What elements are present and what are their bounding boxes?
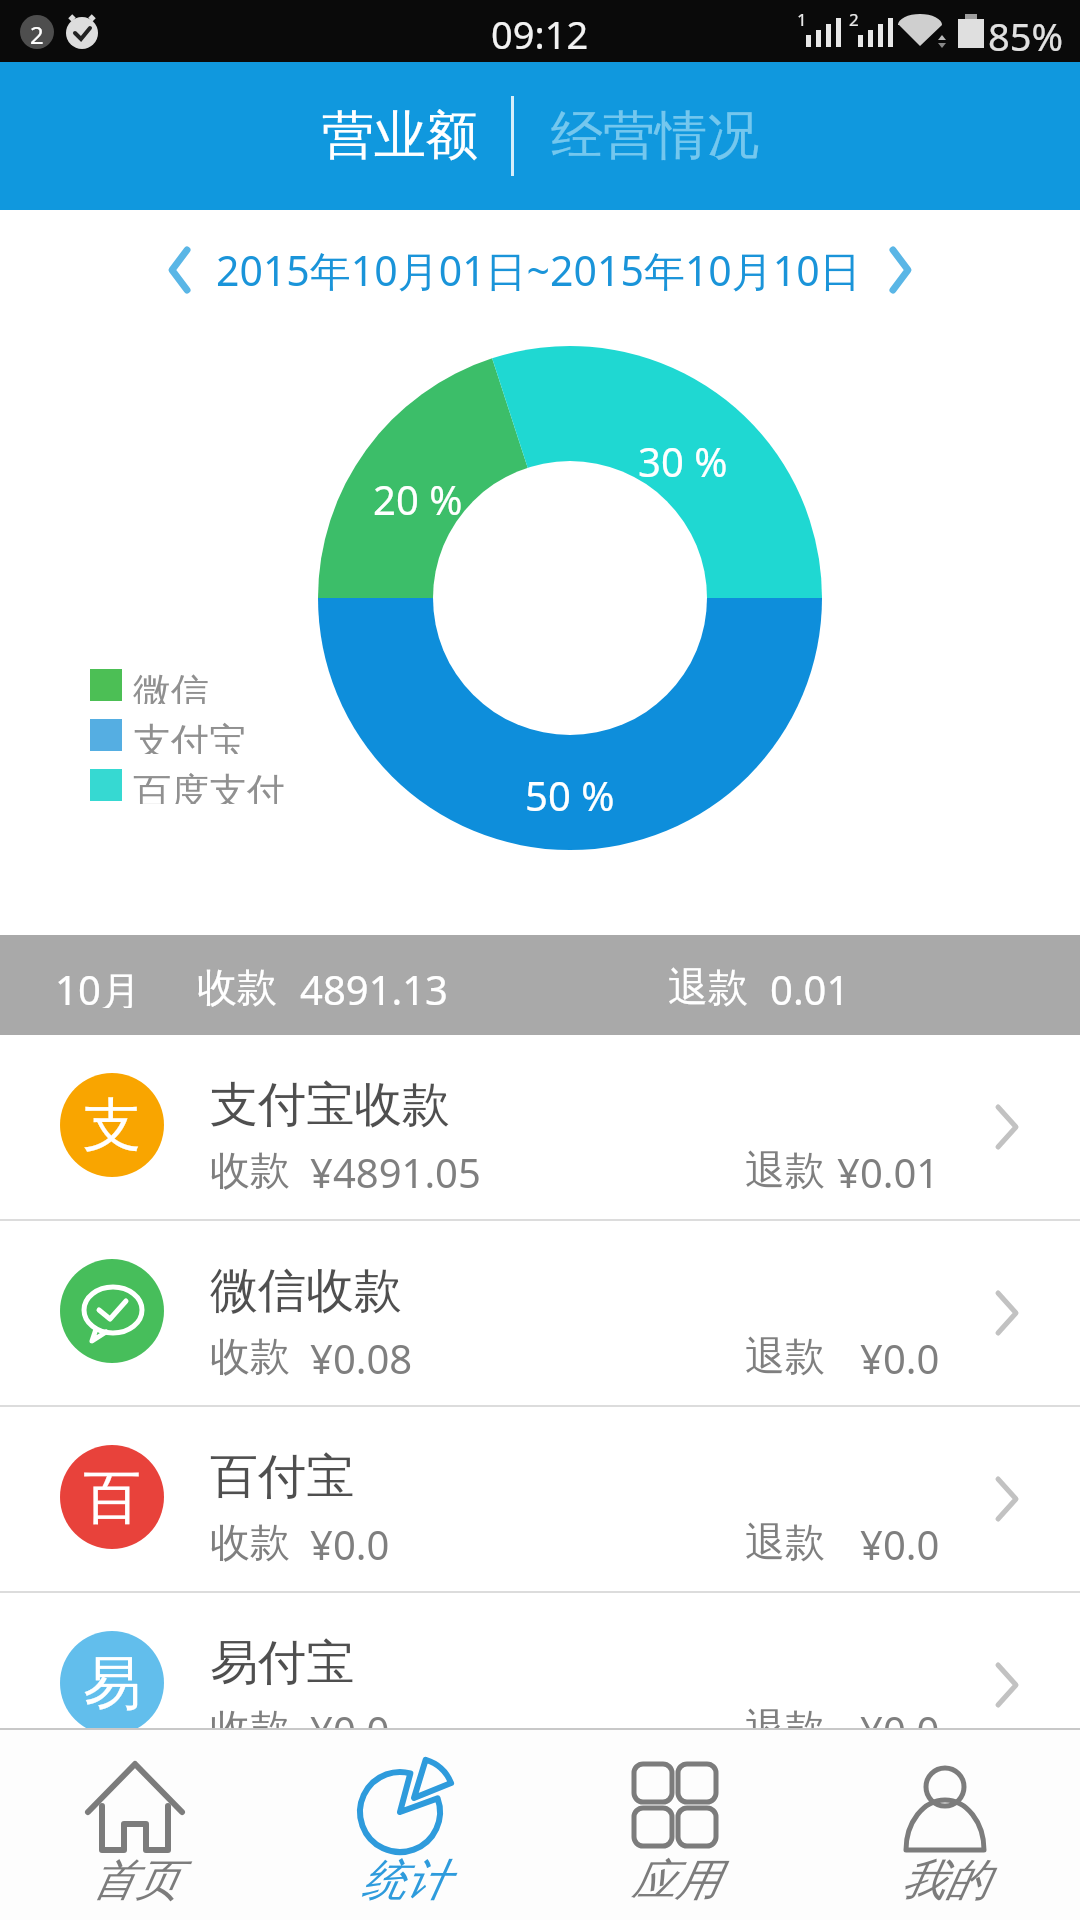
staticText: 09:12 [491,8,589,56]
staticText: 4891.13 [300,962,448,1008]
button[interactable]: 支 [0,1035,1080,1221]
staticText: 2 [849,8,859,26]
button[interactable] [810,1730,1080,1920]
staticText: 收款 [210,1145,290,1191]
staticText: 百度支付 [133,768,285,804]
button[interactable]: 微信收款 [0,1221,1080,1407]
button[interactable] [0,1730,270,1920]
button[interactable] [860,225,940,315]
staticText: 支 [83,1089,141,1162]
button[interactable]: 易 [0,1593,1080,1728]
staticText: 百 [83,1461,141,1534]
staticText: 0.01 [770,962,850,1008]
button[interactable]: 经营情况 [530,82,780,190]
staticText: ¥0.0 [860,1517,940,1563]
staticText: 支付宝收款 [210,1075,450,1131]
staticText: 首页 [91,1853,179,1908]
staticText: ¥0.0 [860,1331,940,1377]
staticText: 应用 [631,1853,719,1908]
staticText: 微信收款 [210,1261,402,1317]
staticText: 营业额 [322,103,478,169]
staticText: 退款 [668,962,748,1008]
staticText: 1 [797,8,807,26]
staticText: 30 % [638,434,728,484]
staticText: 易付宝 [210,1633,354,1689]
staticText: ¥0.0 [310,1517,390,1563]
staticText: 我的 [901,1853,989,1908]
staticText: 收款 [210,1517,290,1563]
staticText: 收款 [197,962,277,1008]
staticText: 收款 [210,1703,290,1749]
staticText: 退款 [745,1145,825,1191]
staticText: 统计 [361,1853,449,1908]
staticText: 2 [30,18,44,48]
staticText: 易 [83,1647,141,1720]
button[interactable] [140,225,220,315]
staticText: 85% [988,10,1064,54]
staticText: 2015年10月01日~2015年10月10日 [216,242,861,298]
button[interactable] [540,1730,810,1920]
staticText: ¥0.08 [310,1331,413,1377]
staticText: 经营情况 [551,103,759,169]
staticText: ¥0.0 [860,1703,940,1749]
button[interactable]: 百 [0,1407,1080,1593]
staticText: 微信 [133,668,209,704]
staticText: 退款 [745,1517,825,1563]
staticText: 50 % [525,768,615,818]
staticText: ¥0.01 [837,1145,940,1191]
button[interactable] [270,1730,540,1920]
staticText: ¥4891.05 [310,1145,481,1191]
staticText: 百付宝 [210,1447,354,1503]
staticText: ¥0.0 [310,1703,390,1749]
staticText: 退款 [745,1331,825,1377]
staticText: 支付宝 [133,718,247,754]
staticText: 收款 [210,1331,290,1377]
staticText: 20 % [373,472,463,522]
staticText: 退款 [745,1703,825,1749]
staticText: 10月 [55,962,141,1008]
button[interactable]: 营业额 [290,82,510,190]
